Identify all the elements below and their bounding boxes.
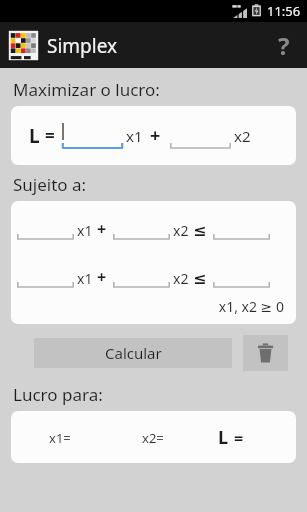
button[interactable]: Coefficient input	[17, 279, 74, 288]
staticText: x2	[234, 126, 251, 146]
staticText: +	[150, 123, 161, 148]
staticText: x1	[77, 221, 93, 240]
staticText: x1, x2 ≥ 0	[17, 297, 284, 316]
staticText: L	[29, 123, 40, 149]
staticText: Calcular	[105, 343, 162, 363]
staticText: x1	[77, 269, 93, 288]
staticText: Sujeito a:	[13, 173, 87, 196]
staticText: x1=	[49, 429, 71, 447]
button[interactable]: Calcular	[34, 338, 232, 368]
button[interactable]: Help	[261, 22, 307, 68]
button[interactable]: Coefficient input	[113, 231, 170, 240]
button[interactable]: Clear	[243, 335, 288, 371]
staticText: ≤	[193, 269, 207, 288]
staticText: =	[234, 427, 244, 449]
button[interactable]: Coefficient input	[213, 279, 270, 288]
staticText: ≤	[193, 221, 207, 240]
staticText: +	[97, 266, 107, 288]
button[interactable]: Coefficient input	[213, 231, 270, 240]
staticText: 11:56	[267, 2, 301, 20]
staticText: x1	[126, 126, 143, 146]
staticText: =	[45, 124, 55, 147]
button[interactable]: Coefficient input	[113, 279, 170, 288]
staticText: Simplex	[47, 33, 118, 59]
staticText: x2	[173, 269, 189, 288]
staticText: L	[218, 425, 229, 450]
staticText: ?	[278, 29, 290, 62]
staticText: Lucro para:	[13, 383, 103, 406]
staticText: x2=	[142, 429, 164, 447]
button[interactable]: Coefficient input	[62, 140, 123, 149]
staticText: +	[97, 218, 107, 240]
button[interactable]: Coefficient input	[17, 231, 74, 240]
staticText: Maximizar o lucro:	[13, 78, 160, 101]
staticText: x2	[173, 221, 189, 240]
button[interactable]: Coefficient input	[170, 140, 231, 149]
